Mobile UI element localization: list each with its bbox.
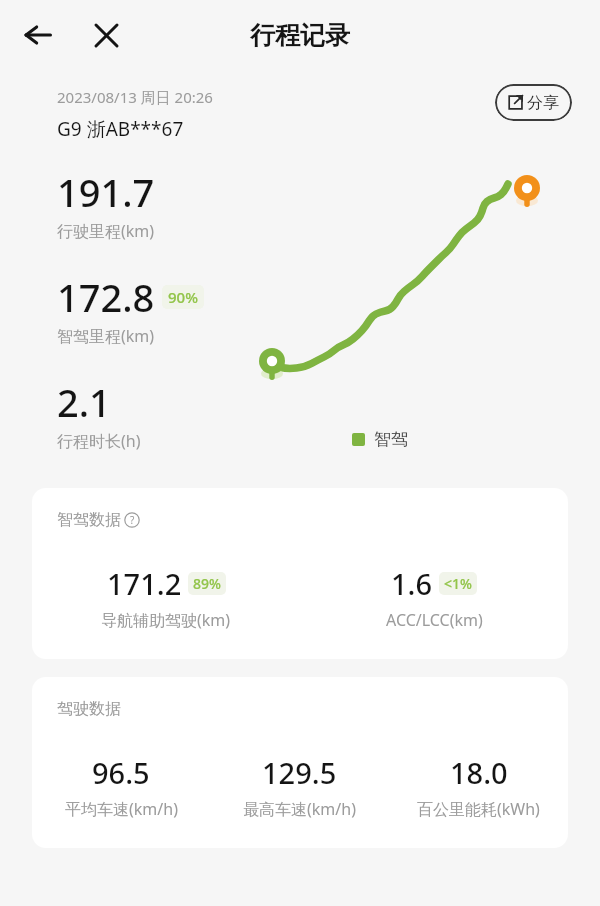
- staticText: <1%: [444, 574, 472, 593]
- staticText: 18.0: [450, 753, 508, 792]
- staticText: 2.1: [57, 376, 111, 428]
- staticText: 1.6: [391, 564, 433, 603]
- staticText: 智驾里程(km): [57, 325, 155, 347]
- staticText: 导航辅助驾驶(km): [101, 609, 231, 631]
- staticText: ?: [130, 513, 135, 527]
- staticText: 191.7: [57, 166, 155, 218]
- staticText: 分享: [527, 93, 559, 113]
- staticText: 最高车速(km/h): [243, 798, 356, 820]
- staticText: 智驾数据: [57, 510, 121, 530]
- staticText: 行驶里程(km): [57, 220, 155, 242]
- staticText: 89%: [193, 574, 221, 593]
- button[interactable]: 分享: [495, 84, 572, 121]
- staticText: 平均车速(km/h): [65, 798, 178, 820]
- staticText: 96.5: [92, 753, 150, 792]
- staticText: 智驾: [374, 429, 408, 450]
- staticText: ACC/LCC(km): [386, 609, 483, 631]
- staticText: 驾驶数据: [57, 699, 121, 719]
- staticText: G9 浙AB***67: [57, 116, 184, 142]
- staticText: 行程记录: [250, 20, 350, 51]
- staticText: 百公里能耗(kWh): [417, 798, 540, 820]
- button[interactable]: Back: [14, 11, 62, 59]
- staticText: 行程时长(h): [57, 430, 141, 452]
- button[interactable]: 智驾数据: [57, 510, 140, 530]
- button[interactable]: Close: [82, 11, 130, 59]
- staticText: 129.5: [262, 753, 337, 792]
- other: Info: [124, 512, 140, 528]
- staticText: 2023/08/13 周日 20:26: [57, 87, 213, 107]
- staticText: 172.8: [57, 271, 155, 323]
- staticText: 171.2: [107, 564, 182, 603]
- staticText: 90%: [168, 287, 198, 307]
